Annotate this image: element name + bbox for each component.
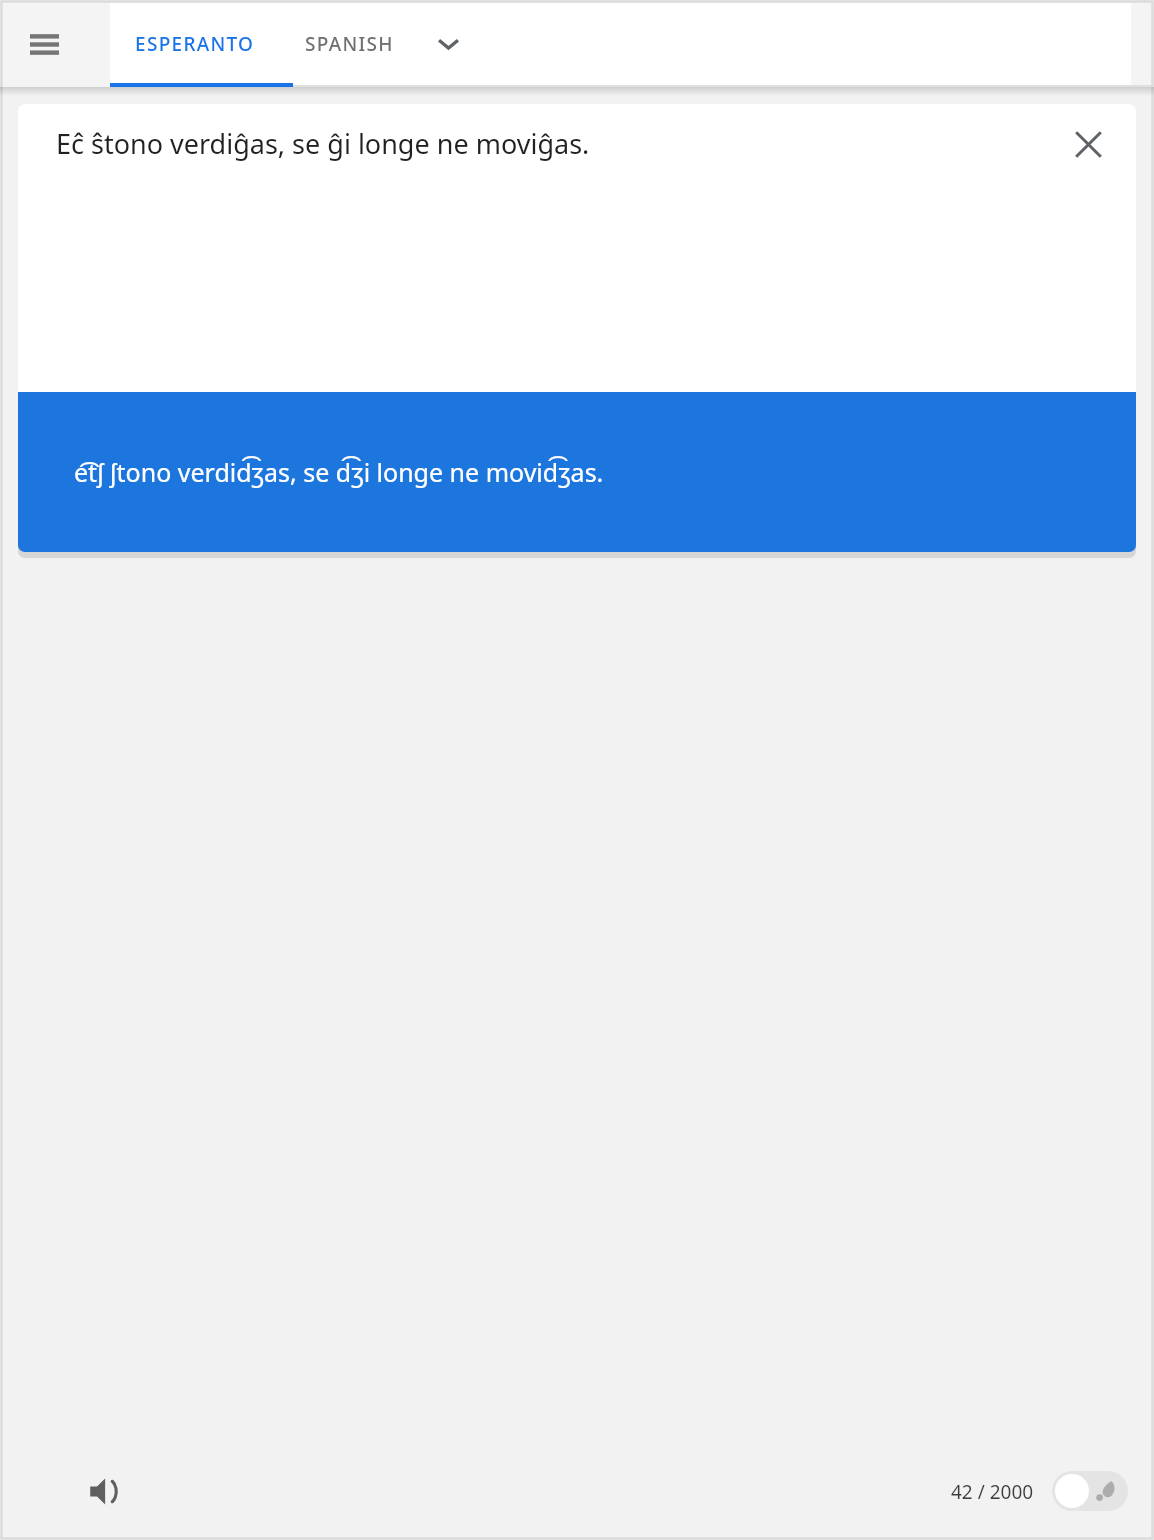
staticText: 42 / 2000 xyxy=(951,1479,1034,1505)
staticText: SPANISH xyxy=(305,31,394,57)
staticText: ESPERANTO xyxy=(135,31,255,57)
button[interactable]: Listen xyxy=(71,1458,137,1524)
button[interactable]: More languages xyxy=(419,0,477,87)
button[interactable]: SPANISH xyxy=(280,0,419,87)
staticText: e͡tʃ ʃtono verdid͡ʒas, se d͡ʒi longe ne … xyxy=(74,455,604,489)
button[interactable]: Toggle phonetic transcription xyxy=(1052,1465,1128,1517)
staticText: Eĉ ŝtono verdiĝas, se ĝi longe ne moviĝa… xyxy=(56,125,590,162)
button[interactable]: Clear text xyxy=(1060,116,1116,172)
button[interactable]: Open navigation menu xyxy=(14,14,74,74)
button[interactable]: ESPERANTO xyxy=(110,0,280,87)
button[interactable]: e͡tʃ ʃtono verdid͡ʒas, se d͡ʒi longe ne … xyxy=(18,392,1136,552)
